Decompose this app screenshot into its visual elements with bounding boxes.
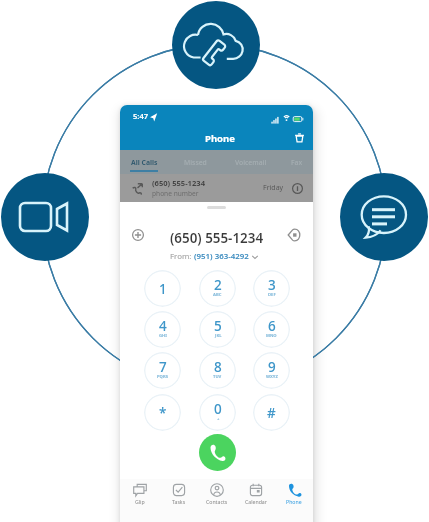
staticText: GHI xyxy=(159,333,167,339)
staticText: From: xyxy=(170,251,194,262)
staticText: 3 xyxy=(268,276,276,294)
button[interactable]: 6 xyxy=(253,311,290,348)
button[interactable]: Tasks xyxy=(159,479,198,513)
staticText: * xyxy=(159,404,167,422)
staticText: (650) 555-1234 xyxy=(170,229,264,247)
button[interactable]: Phone xyxy=(274,479,313,513)
button[interactable]: Feature xyxy=(340,173,428,261)
button[interactable]: 9 xyxy=(253,352,290,389)
staticText: DEF xyxy=(268,292,276,298)
button[interactable]: 4 xyxy=(144,311,181,348)
button[interactable]: Delete xyxy=(294,132,305,143)
staticText: (650) 555-1234 xyxy=(152,178,205,188)
staticText: Tasks xyxy=(172,498,186,505)
staticText: Contacts xyxy=(206,498,228,505)
button[interactable]: Missed xyxy=(171,150,219,174)
button[interactable]: 3 xyxy=(253,270,290,307)
button[interactable]: 2 xyxy=(199,270,236,307)
staticText: 5 xyxy=(214,317,222,335)
button[interactable]: Calendar xyxy=(236,479,275,513)
staticText: # xyxy=(267,404,276,422)
staticText: Friday xyxy=(263,183,284,193)
staticText: 9 xyxy=(268,358,276,376)
staticText: 1 xyxy=(159,280,167,298)
button[interactable]: Feature xyxy=(172,1,260,89)
staticText: WXYZ xyxy=(266,374,278,380)
staticText: 0 xyxy=(214,400,222,418)
staticText: Phone xyxy=(286,498,302,505)
button[interactable]: 7 xyxy=(144,352,181,389)
button[interactable]: Contacts xyxy=(197,479,236,513)
staticText: All Calls xyxy=(131,158,158,167)
staticText: 2 xyxy=(214,276,222,294)
staticText: Fax xyxy=(291,158,303,167)
button[interactable]: 0 xyxy=(199,394,236,431)
button[interactable]: Glip xyxy=(120,479,159,513)
button[interactable]: 1 xyxy=(144,270,181,307)
staticText: Glip xyxy=(135,498,145,505)
button[interactable]: All Calls xyxy=(120,150,168,174)
button[interactable]: From: xyxy=(170,251,257,262)
staticText: Missed xyxy=(184,158,207,167)
button[interactable]: 8 xyxy=(199,352,236,389)
button[interactable]: 5 xyxy=(199,311,236,348)
staticText: + xyxy=(217,416,220,422)
staticText: phone number xyxy=(152,189,199,198)
button[interactable]: Voicemail xyxy=(227,150,275,174)
staticText: ABC xyxy=(213,292,222,298)
staticText: Voicemail xyxy=(235,158,267,167)
staticText: 8 xyxy=(214,358,222,376)
staticText: TUV xyxy=(213,374,222,380)
button[interactable]: # xyxy=(253,394,290,431)
staticText: PQRS xyxy=(157,374,168,380)
button[interactable]: Backspace xyxy=(287,228,301,242)
button[interactable]: * xyxy=(144,394,181,431)
staticText: MNO xyxy=(266,333,277,339)
staticText: Phone xyxy=(205,132,235,145)
button[interactable]: Feature xyxy=(1,173,89,261)
staticText: JKL xyxy=(215,333,222,339)
button[interactable]: Add contact xyxy=(131,228,145,242)
staticText: 6 xyxy=(268,317,276,335)
staticText: 7 xyxy=(159,358,167,376)
staticText: 4 xyxy=(159,317,167,335)
button[interactable]: (650) 555-1234 xyxy=(120,174,313,202)
button[interactable]: Call xyxy=(199,434,236,471)
staticText: 5:47 xyxy=(133,111,149,121)
staticText: (951) 363-4292 xyxy=(194,251,249,262)
staticText: Calendar xyxy=(245,498,267,505)
